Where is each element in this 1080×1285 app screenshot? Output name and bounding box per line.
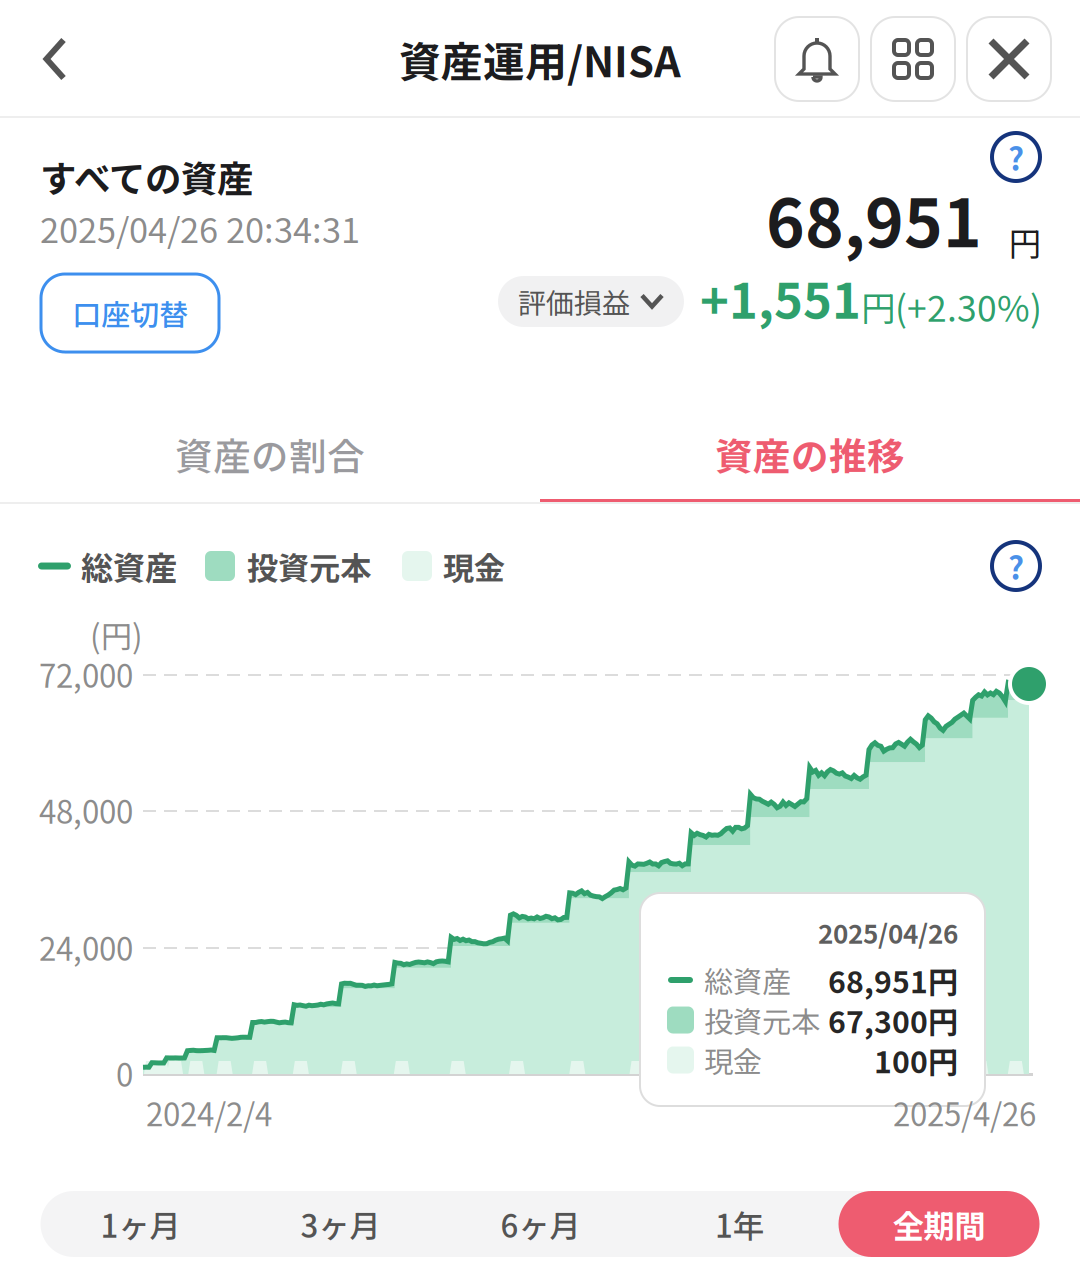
staticText: (円) [90,612,143,657]
staticText: 評価損益 [518,281,630,322]
staticText: 2024/2/4 [146,1090,272,1135]
staticText: ? [1008,134,1024,180]
staticText: 24,000 [39,924,133,970]
staticText: 全期間 [892,1201,985,1247]
staticText: 67,300円 [828,998,958,1042]
button[interactable]: Close [967,17,1051,101]
button[interactable]: Help [990,131,1042,183]
button[interactable]: 1ヶ月 [40,1191,240,1257]
button[interactable]: 6ヶ月 [440,1191,640,1257]
staticText: 2025/04/26 [818,914,958,951]
staticText: (+2.30%) [895,281,1042,332]
staticText: すべての資産 [40,150,253,203]
staticText: 68,951 [766,171,982,266]
button[interactable]: Apps [871,17,955,101]
button[interactable]: 3ヶ月 [240,1191,440,1257]
button[interactable]: 全期間 [838,1191,1039,1257]
staticText: 現金 [704,1039,762,1081]
staticText: 2025/04/26 20:34:31 [40,203,360,253]
staticText: 資産の推移 [715,427,905,481]
staticText: 総資産 [81,543,177,589]
button[interactable]: Notifications [775,17,859,101]
staticText: 1ヶ月 [100,1201,180,1247]
staticText: +1,551 [700,262,861,333]
staticText: 円 [1009,218,1041,265]
button[interactable]: 評価損益 [498,276,684,327]
button[interactable]: 口座切替 [41,274,219,352]
button[interactable]: 1年 [640,1191,838,1257]
staticText: 円 [861,281,895,331]
staticText: 1年 [715,1201,764,1247]
button[interactable]: 資産の推移 [540,404,1080,504]
staticText: 100円 [874,1038,958,1082]
button[interactable]: 資産の割合 [0,404,540,504]
button[interactable]: Back [0,0,110,118]
staticText: 48,000 [39,787,133,833]
staticText: 総資産 [704,959,791,1001]
staticText: 3ヶ月 [300,1201,380,1247]
staticText: 現金 [443,543,505,589]
staticText: 資産運用/NISA [399,29,681,89]
staticText: 投資元本 [704,999,820,1041]
staticText: 資産の割合 [175,427,365,481]
staticText: 口座切替 [72,292,188,334]
button[interactable]: Chart help [990,540,1042,592]
staticText: 72,000 [39,651,133,697]
staticText: 0 [116,1050,133,1096]
staticText: 2025/4/26 [893,1090,1036,1135]
staticText: 68,951円 [828,958,958,1002]
staticText: 投資元本 [247,543,371,589]
staticText: ? [1008,543,1024,589]
staticText: 6ヶ月 [500,1201,580,1247]
